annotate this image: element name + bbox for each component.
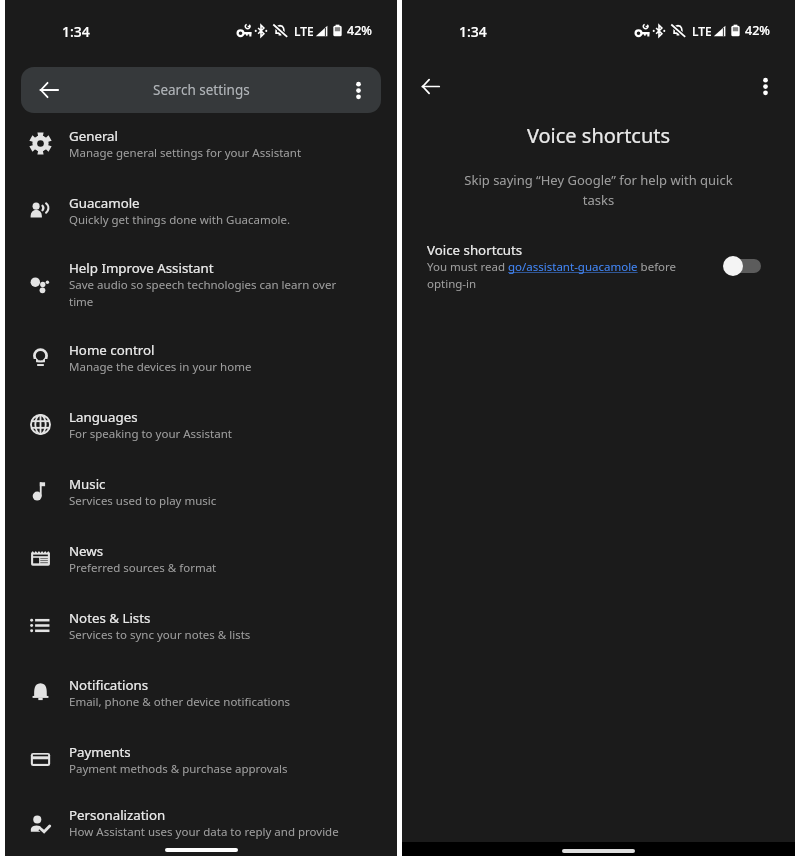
staticText: Email, phone & other device notification…	[69, 694, 291, 710]
button[interactable]: Notes & Lists	[5, 592, 397, 659]
button[interactable]: Music	[5, 458, 397, 525]
staticText: Payment methods & purchase approvals	[69, 761, 288, 777]
staticText: LTE	[294, 23, 314, 39]
staticText: Home control	[69, 341, 155, 359]
staticText: Personalization	[69, 806, 166, 824]
staticText: Guacamole	[69, 194, 140, 212]
button[interactable]: Voice shortcuts	[402, 241, 795, 291]
staticText: Quickly get things done with Guacamole.	[69, 212, 291, 228]
staticText: Voice shortcuts	[427, 241, 523, 259]
staticText: Notes & Lists	[69, 609, 151, 627]
button[interactable]: More options	[349, 81, 368, 100]
staticText: 1:34	[459, 22, 487, 41]
staticText: News	[69, 542, 104, 560]
staticText: Voice shortcuts	[402, 122, 795, 149]
staticText: Languages	[69, 408, 138, 426]
button[interactable]: Payments	[5, 726, 397, 793]
button[interactable]: Personalization	[5, 793, 397, 853]
staticText: LTE	[692, 23, 712, 39]
staticText: 1:34	[62, 22, 90, 41]
button[interactable]: More options	[756, 77, 775, 96]
staticText: Help Improve Assistant	[69, 259, 214, 277]
staticText: Services to sync your notes & lists	[69, 627, 251, 643]
staticText: General	[69, 127, 119, 145]
staticText: For speaking to your Assistant	[69, 426, 232, 442]
button[interactable]: News	[5, 525, 397, 592]
staticText: Skip saying “Hey Google” for help with q…	[458, 171, 739, 209]
staticText: You must read go/assistant-guacamole bef…	[427, 259, 681, 291]
staticText: Save audio so speech technologies can le…	[69, 277, 344, 309]
button[interactable]: General	[5, 110, 397, 177]
button[interactable]: Home control	[5, 324, 397, 391]
staticText: Services used to play music	[69, 493, 217, 509]
button[interactable]: Back	[21, 67, 381, 113]
staticText: 42%	[347, 22, 372, 39]
staticText: How Assistant uses your data to reply an…	[69, 824, 339, 840]
button[interactable]: Guacamole	[5, 177, 397, 244]
button[interactable]: Voice shortcuts toggle	[721, 248, 761, 284]
staticText: Preferred sources & format	[69, 560, 217, 576]
staticText: Notifications	[69, 676, 149, 694]
staticText: Music	[69, 475, 106, 493]
staticText: 42%	[745, 22, 770, 39]
staticText: Payments	[69, 743, 131, 761]
button[interactable]: Back	[419, 75, 442, 98]
button[interactable]: Help Improve Assistant	[5, 244, 397, 324]
button[interactable]: Languages	[5, 391, 397, 458]
staticText: Search settings	[153, 81, 250, 99]
staticText: Manage general settings for your Assista…	[69, 145, 302, 161]
button[interactable]: Notifications	[5, 659, 397, 726]
staticText: Manage the devices in your home	[69, 359, 252, 375]
button[interactable]: Back	[37, 78, 61, 102]
